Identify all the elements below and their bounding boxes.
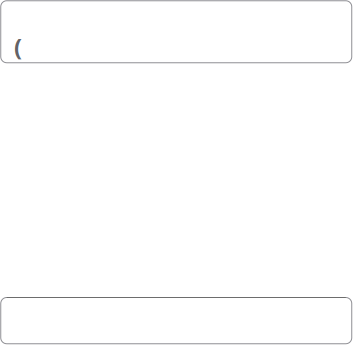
button[interactable]: Text field xyxy=(1,1,352,63)
staticText: ( xyxy=(14,31,22,63)
button[interactable]: Toolbar xyxy=(1,297,352,344)
